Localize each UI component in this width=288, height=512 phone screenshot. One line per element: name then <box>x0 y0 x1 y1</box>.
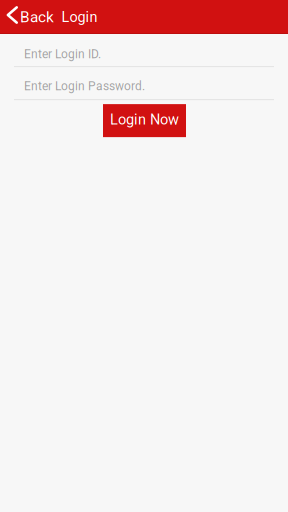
staticText: Enter Login ID. <box>24 47 101 61</box>
button[interactable]: Back <box>0 0 59 34</box>
button[interactable]: Login Now <box>102 104 185 137</box>
button[interactable]: Login <box>59 0 98 34</box>
staticText: Login Now <box>110 111 179 128</box>
button[interactable]: Enter Login ID. <box>14 34 274 67</box>
staticText: Back <box>20 8 54 26</box>
staticText: Enter Login Password. <box>24 79 145 93</box>
button[interactable]: Enter Login Password. <box>14 67 274 100</box>
staticText: Login <box>62 9 98 25</box>
